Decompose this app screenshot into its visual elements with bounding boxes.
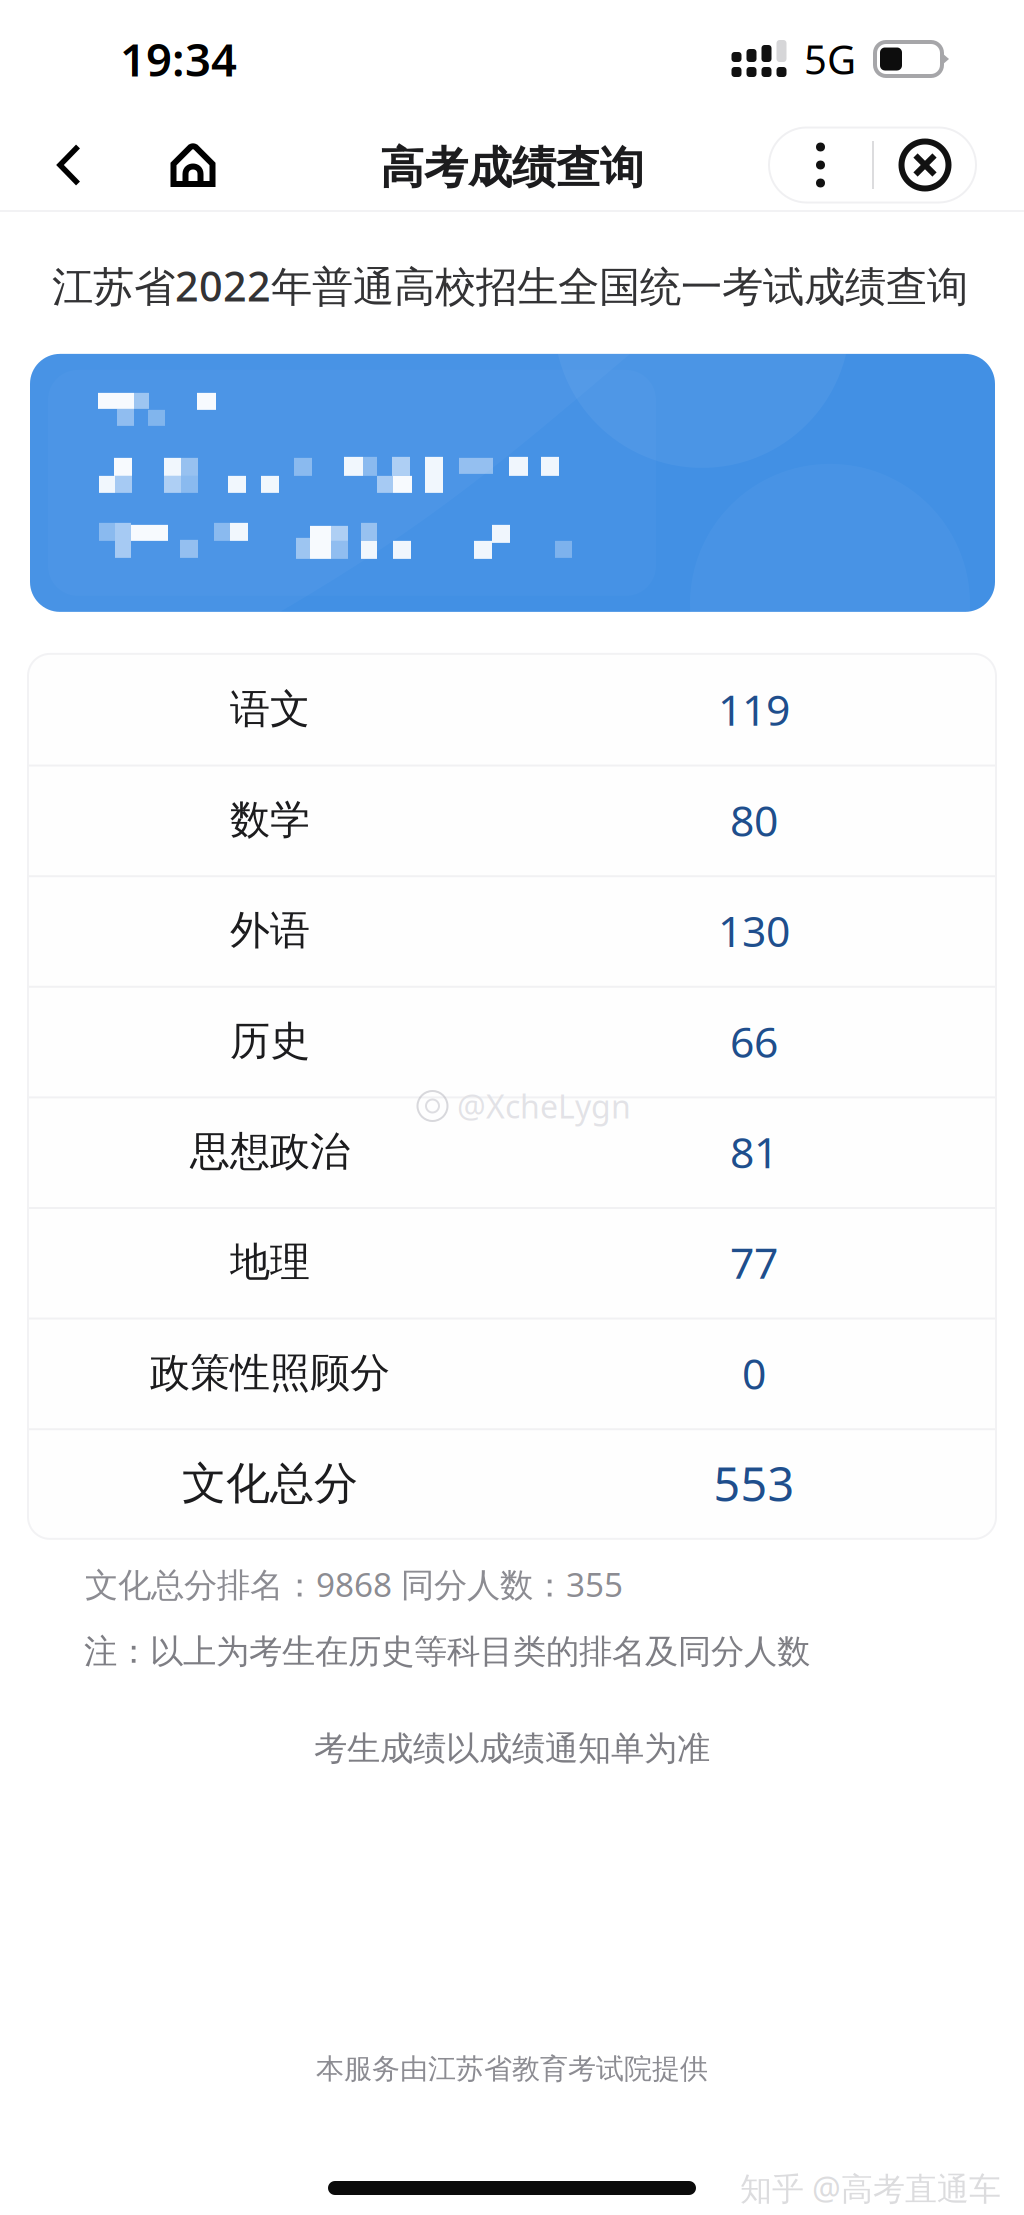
staticText: 注：以上为考生在历史等科目类的排名及同分人数 <box>84 1631 810 1672</box>
button[interactable]: 首页 <box>165 118 221 212</box>
staticText: 本服务由江苏省教育考试院提供 <box>316 2052 708 2086</box>
staticText: 地理 <box>230 1238 310 1287</box>
staticText: 80 <box>730 792 778 848</box>
staticText: 思想政治 <box>190 1127 350 1176</box>
staticText: 553 <box>713 1452 794 1514</box>
staticText: 66 <box>730 1013 778 1069</box>
staticText: 文化总分 <box>182 1456 358 1510</box>
button[interactable]: 数学 <box>28 765 996 875</box>
staticText: 0 <box>742 1345 766 1401</box>
staticText: 历史 <box>230 1016 310 1066</box>
button[interactable]: 返回 <box>29 118 109 212</box>
button[interactable]: 思想政治 <box>28 1096 996 1207</box>
button[interactable]: 文化总分 <box>28 1428 996 1539</box>
staticText: 考生成绩以成绩通知单为准 <box>314 1728 710 1769</box>
button[interactable]: 地理 <box>28 1207 996 1318</box>
button[interactable]: 更多 <box>769 127 872 202</box>
staticText: 81 <box>730 1123 778 1180</box>
staticText: 知乎 @高考直通车 <box>740 2167 1001 2209</box>
staticText: 语文 <box>230 685 310 734</box>
staticText: 高考成绩查询 <box>380 141 644 195</box>
button[interactable]: 政策性照顾分 <box>28 1318 996 1428</box>
staticText: 政策性照顾分 <box>150 1348 390 1397</box>
staticText: 77 <box>730 1234 778 1291</box>
button[interactable]: 关闭 <box>874 127 976 202</box>
staticText: 江苏省2022年普通高校招生全国统一考试成绩查询 <box>52 258 968 313</box>
button[interactable]: 历史 <box>28 986 996 1096</box>
staticText: 130 <box>718 902 790 959</box>
button[interactable]: 语文 <box>28 654 996 765</box>
staticText: @XcheLygn <box>457 1085 631 1127</box>
staticText: 19:34 <box>120 29 237 89</box>
staticText: 外语 <box>230 906 310 955</box>
staticText: 文化总分排名：9868 同分人数：355 <box>85 1562 623 1606</box>
staticText: 5G <box>804 32 856 85</box>
staticText: 119 <box>718 681 790 738</box>
staticText: 数学 <box>230 795 310 844</box>
button[interactable]: 外语 <box>28 875 996 986</box>
